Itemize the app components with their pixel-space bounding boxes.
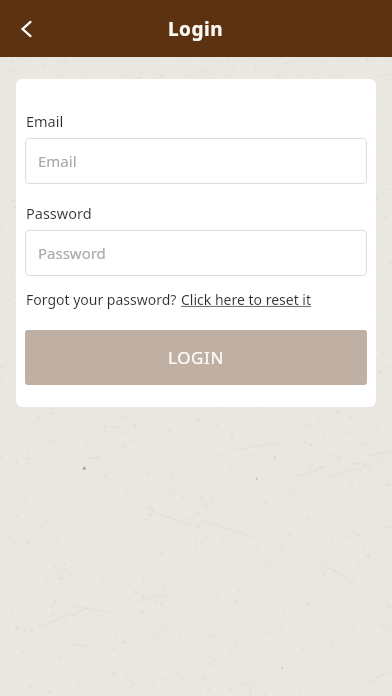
staticText: Password (26, 203, 92, 223)
staticText: Click here to reset it (181, 290, 312, 309)
staticText: Email (38, 151, 77, 171)
staticText: Forgot your password? (26, 290, 181, 309)
button[interactable]: LOGIN (25, 330, 367, 385)
button[interactable]: Password (25, 230, 367, 276)
button[interactable]: Click here to reset it (181, 290, 312, 309)
staticText: Login (168, 16, 224, 42)
staticText: Password (38, 243, 106, 263)
button[interactable]: Email (25, 138, 367, 184)
staticText: LOGIN (168, 346, 224, 369)
button[interactable]: Back (4, 6, 50, 52)
staticText: Email (26, 111, 64, 131)
